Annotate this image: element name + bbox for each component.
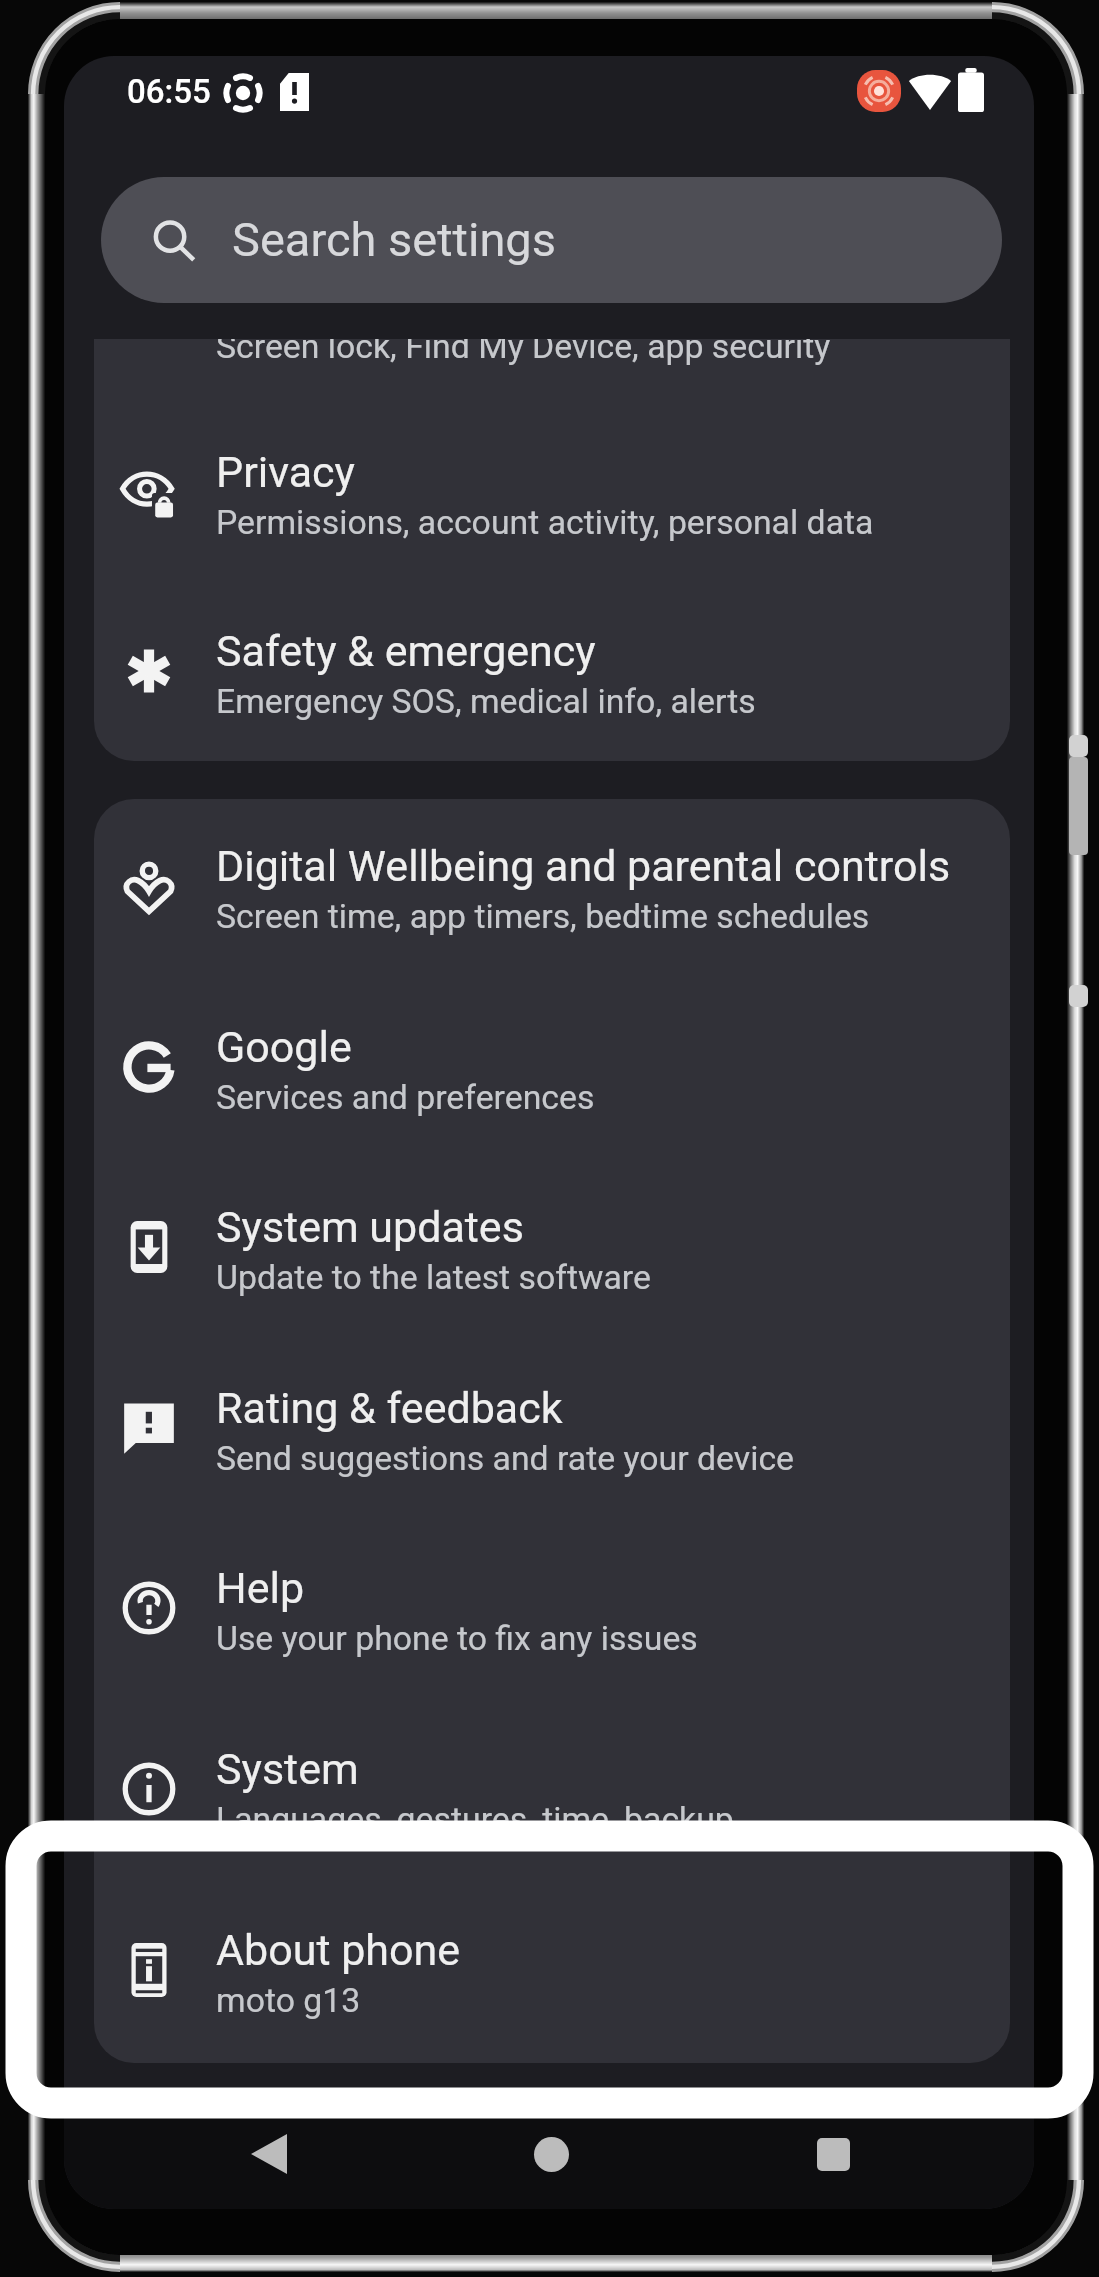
staticText: Screen lock, Find My Device, app securit… <box>216 339 831 367</box>
button[interactable]: Google <box>94 979 1010 1157</box>
staticText: Privacy <box>216 447 355 497</box>
staticText: System updates <box>216 1202 524 1252</box>
button[interactable]: Safety & emergency <box>94 583 1010 761</box>
staticText: Safety & emergency <box>216 626 596 676</box>
button[interactable]: Rating & feedback <box>94 1340 1010 1518</box>
button[interactable]: Search settings <box>101 177 1002 303</box>
staticText: Update to the latest software <box>216 1258 651 1298</box>
button[interactable]: Security & privacy <box>94 339 1010 406</box>
button[interactable]: System updates <box>94 1159 1010 1337</box>
staticText: Emergency SOS, medical info, alerts <box>216 682 756 722</box>
button[interactable]: Digital Wellbeing and parental controls <box>94 798 1010 976</box>
button[interactable]: Home <box>496 2118 606 2190</box>
staticText: Screen time, app timers, bedtime schedul… <box>216 897 870 937</box>
staticText: Use your phone to fix any issues <box>216 1619 698 1659</box>
staticText: Rating & feedback <box>216 1383 563 1433</box>
staticText: Digital Wellbeing and parental controls <box>216 841 951 891</box>
button[interactable]: Recent apps <box>778 2118 888 2190</box>
staticText: 06:55 <box>127 72 211 111</box>
button[interactable]: Back <box>214 2118 324 2190</box>
staticText: Help <box>216 1563 305 1613</box>
staticText: Send suggestions and rate your device <box>216 1439 795 1479</box>
staticText: Services and preferences <box>216 1078 595 1118</box>
button[interactable]: About phone <box>94 1882 1010 2060</box>
staticText: System <box>216 1744 359 1794</box>
staticText: About phone <box>216 1925 461 1975</box>
staticText: Search settings <box>232 212 556 267</box>
button[interactable]: Help <box>94 1520 1010 1698</box>
button[interactable]: Privacy <box>94 404 1010 582</box>
staticText: moto g13 <box>216 1981 361 2021</box>
staticText: Google <box>216 1022 352 1072</box>
staticText: Permissions, account activity, personal … <box>216 503 874 543</box>
staticText: Languages, gestures, time, backup <box>216 1800 734 1840</box>
button[interactable]: System <box>94 1701 1010 1879</box>
